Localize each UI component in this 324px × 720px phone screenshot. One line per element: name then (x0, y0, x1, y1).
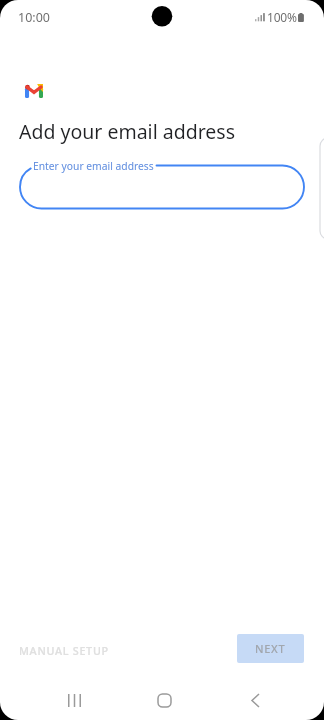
staticText: Enter your email address (33, 159, 154, 173)
staticText: 10:00 (18, 9, 50, 26)
button[interactable]: Recent apps (52, 679, 96, 720)
button[interactable]: Home (142, 679, 186, 720)
button[interactable]: Enter your email address (20, 160, 304, 210)
button[interactable]: NEXT (237, 634, 304, 663)
staticText: Add your email address (19, 118, 236, 145)
button[interactable]: Back (233, 679, 277, 720)
staticText: NEXT (255, 641, 286, 656)
staticText: 100% (267, 9, 297, 25)
staticText: MANUAL SETUP (19, 643, 109, 658)
button[interactable]: MANUAL SETUP (19, 643, 109, 658)
